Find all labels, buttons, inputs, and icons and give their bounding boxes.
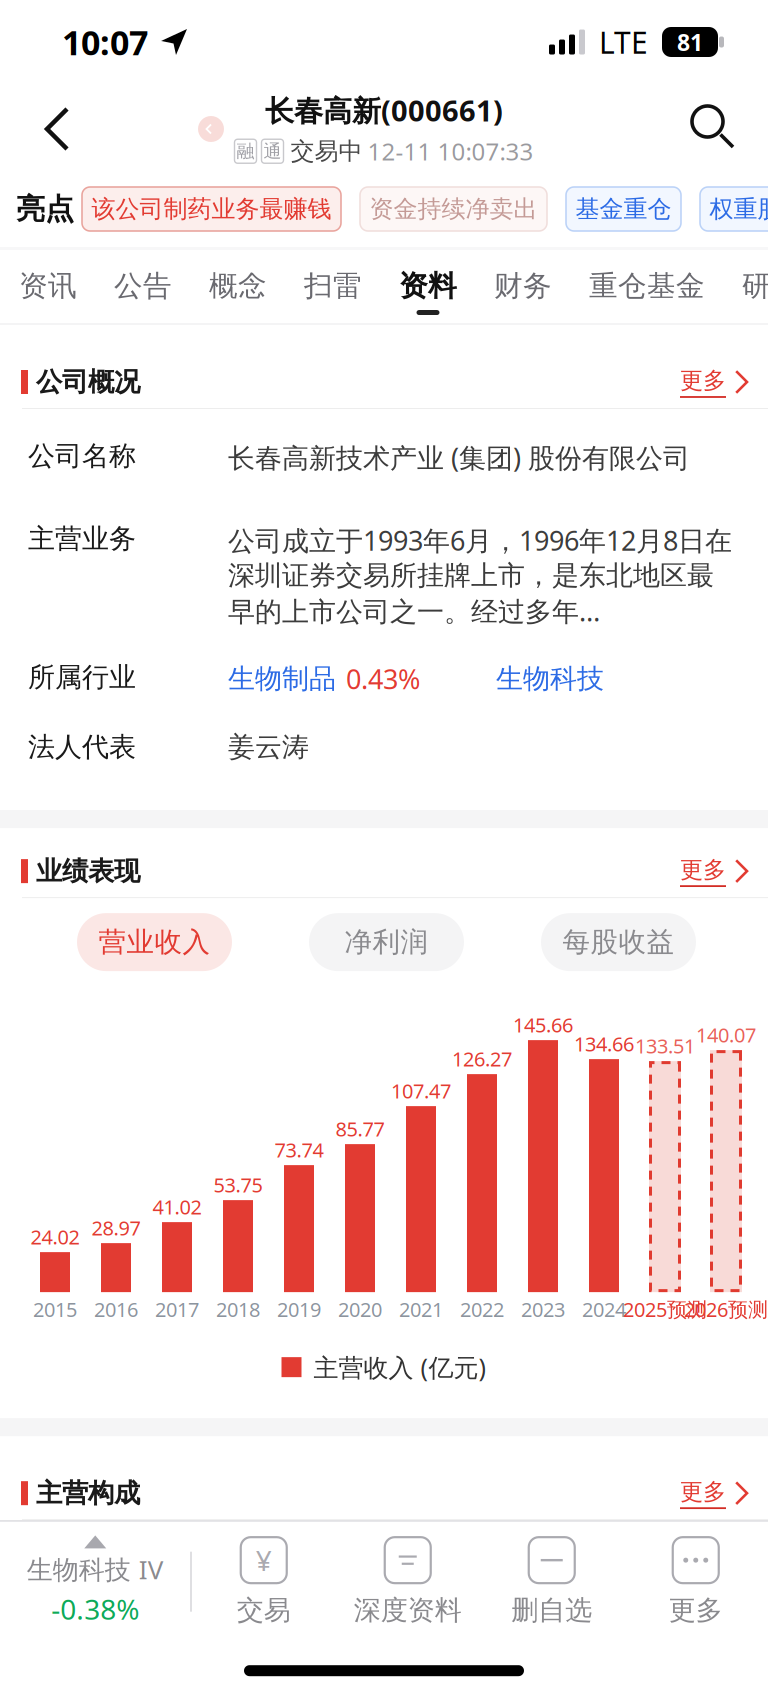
staticText: 12-11 10:07:33	[367, 135, 533, 168]
staticText: 41.02	[152, 1193, 201, 1220]
staticText: 24.02	[30, 1223, 79, 1250]
staticText: 更多	[680, 1477, 726, 1506]
button[interactable]: 生物制品	[228, 660, 420, 697]
button[interactable]: 该公司制药业务最赚钱	[82, 187, 341, 231]
staticText: 主营收入 (亿元)	[313, 1350, 486, 1384]
staticText: 生物制品	[228, 662, 336, 696]
staticText: 基金重仓	[575, 194, 671, 224]
staticText: 2018	[216, 1295, 260, 1323]
staticText: 生物科技	[496, 662, 604, 696]
button[interactable]: 公告	[95, 250, 190, 323]
staticText: 重仓基金	[589, 268, 705, 304]
staticText: 主营构成	[36, 1477, 140, 1510]
button[interactable]: 重仓基金	[570, 250, 723, 323]
staticText: 财务	[494, 268, 552, 304]
staticText: 亮点	[16, 191, 74, 227]
staticText: 81	[677, 26, 703, 58]
staticText: 2019	[277, 1295, 321, 1323]
staticText: -0.38%	[51, 1590, 139, 1628]
button[interactable]: 基金重仓	[566, 187, 681, 231]
button[interactable]: 研报	[723, 250, 768, 323]
button[interactable]: ¥	[192, 1536, 336, 1627]
staticText: 10:07	[62, 19, 148, 65]
staticText: 28.97	[91, 1214, 140, 1241]
staticText: 研报	[742, 268, 768, 304]
staticText: 更多	[680, 855, 726, 884]
button[interactable]: Search	[684, 98, 746, 160]
staticText: 概念	[209, 268, 267, 304]
staticText: 融	[236, 140, 254, 163]
button[interactable]: 深度资料	[336, 1536, 480, 1627]
staticText: 2023	[521, 1295, 565, 1323]
staticText: 145.66	[513, 1011, 573, 1038]
button[interactable]: 财务	[475, 250, 570, 323]
button[interactable]: 删自选	[480, 1536, 624, 1627]
staticText: 140.07	[696, 1021, 756, 1048]
staticText: 长春高新(000661)	[265, 90, 503, 130]
staticText: 生物科技 IV	[27, 1551, 164, 1587]
staticText: 2022	[460, 1295, 504, 1323]
button[interactable]: 更多	[666, 836, 756, 906]
button[interactable]: 扫雷	[285, 250, 380, 323]
staticText: 2015	[33, 1295, 77, 1323]
staticText: 删自选	[511, 1593, 592, 1627]
staticText: 2016	[94, 1295, 138, 1323]
staticText: 深度资料	[354, 1593, 462, 1627]
staticText: 净利润	[344, 925, 428, 959]
button[interactable]: 更多	[624, 1536, 768, 1627]
staticText: LTE	[599, 22, 648, 62]
staticText: 85.77	[335, 1115, 384, 1142]
button[interactable]: 每股收益	[541, 913, 696, 971]
staticText: 2017	[155, 1295, 199, 1323]
button[interactable]: 资金持续净卖出	[360, 187, 547, 231]
staticText: 2020	[338, 1295, 382, 1323]
staticText: 权重股	[709, 194, 768, 224]
staticText: 2024	[582, 1295, 626, 1323]
button[interactable]: 资讯	[0, 250, 95, 323]
staticText: 2026预测	[684, 1295, 768, 1323]
staticText: 主营业务	[28, 522, 136, 556]
staticText: 133.51	[635, 1032, 695, 1059]
staticText: 通	[263, 140, 281, 163]
staticText: 资料	[399, 268, 457, 304]
staticText: 公告	[114, 268, 172, 304]
staticText: 73.74	[274, 1136, 323, 1163]
button[interactable]: 更多	[666, 1458, 756, 1528]
staticText: 2025预测	[623, 1295, 707, 1323]
staticText: 扫雷	[304, 268, 362, 304]
button[interactable]: 生物科技	[496, 662, 604, 696]
button[interactable]: 资料	[380, 250, 475, 323]
staticText: 交易	[237, 1593, 291, 1627]
staticText: 法人代表	[28, 730, 136, 764]
staticText: 公司概况	[36, 365, 140, 398]
staticText: 姜云涛	[228, 730, 309, 764]
staticText: 126.27	[452, 1045, 512, 1072]
staticText: 每股收益	[562, 925, 674, 959]
staticText: 所属行业	[28, 660, 136, 694]
staticText: 长春高新技术产业 (集团) 股份有限公司	[228, 439, 690, 476]
button[interactable]: 权重股	[700, 187, 768, 231]
staticText: 134.66	[574, 1030, 634, 1057]
staticText: 公司名称	[28, 439, 136, 473]
button[interactable]: Back	[20, 92, 94, 166]
staticText: 该公司制药业务最赚钱	[91, 194, 331, 224]
button[interactable]: 更多	[666, 347, 756, 417]
staticText: 交易中	[290, 136, 362, 166]
staticText: ¥	[256, 1541, 272, 1579]
staticText: 107.47	[391, 1077, 451, 1104]
staticText: 资讯	[19, 268, 77, 304]
staticText: 业绩表现	[36, 855, 140, 888]
staticText: 公司成立于1993年6月，1996年12月8日在深圳证券交易所挂牌上市，是东北地…	[228, 522, 732, 629]
staticText: 0.43%	[346, 660, 420, 697]
staticText: 53.75	[213, 1171, 262, 1198]
staticText: 更多	[669, 1593, 723, 1627]
button[interactable]: 净利润	[309, 913, 464, 971]
staticText: 营业收入	[98, 925, 210, 959]
staticText: 资金持续净卖出	[369, 194, 537, 224]
button[interactable]: 营业收入	[77, 913, 232, 971]
staticText: 更多	[680, 366, 726, 395]
staticText: 2021	[399, 1295, 443, 1323]
button[interactable]: 概念	[190, 250, 285, 323]
button[interactable]: 生物科技 IV	[0, 1535, 190, 1628]
